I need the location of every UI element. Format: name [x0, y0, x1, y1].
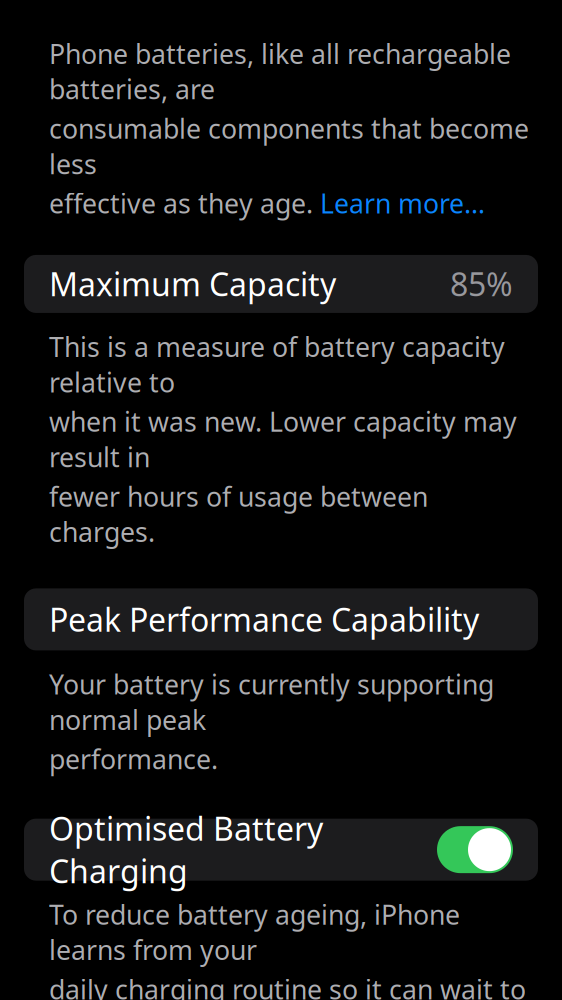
button[interactable]: Optimised Battery Charging — [24, 819, 538, 881]
staticText: daily charging routine so it can wait to… — [49, 971, 526, 1000]
staticText: performance. — [49, 741, 218, 777]
staticText: To reduce battery ageing, iPhone learns … — [49, 897, 460, 967]
staticText: Peak Performance Capability — [49, 598, 479, 641]
button[interactable]: Peak Performance Capability — [24, 588, 538, 650]
staticText: Maximum Capacity — [49, 263, 336, 305]
button[interactable]: Maximum Capacity — [24, 255, 538, 313]
staticText: Learn more… — [320, 185, 485, 221]
staticText: consumable components that become less — [49, 111, 529, 181]
staticText: 85% — [450, 263, 513, 305]
staticText: fewer hours of usage between charges. — [49, 479, 428, 549]
staticText: Optimised Battery Charging — [49, 807, 323, 892]
staticText: effective as they age. — [49, 185, 320, 221]
staticText: when it was new. Lower capacity may resu… — [49, 404, 517, 475]
staticText: Your battery is currently supporting nor… — [49, 666, 494, 737]
staticText: Phone batteries, like all rechargeable b… — [49, 36, 511, 107]
staticText: This is a measure of battery capacity re… — [49, 329, 505, 400]
button[interactable]: Learn more… — [320, 185, 485, 221]
